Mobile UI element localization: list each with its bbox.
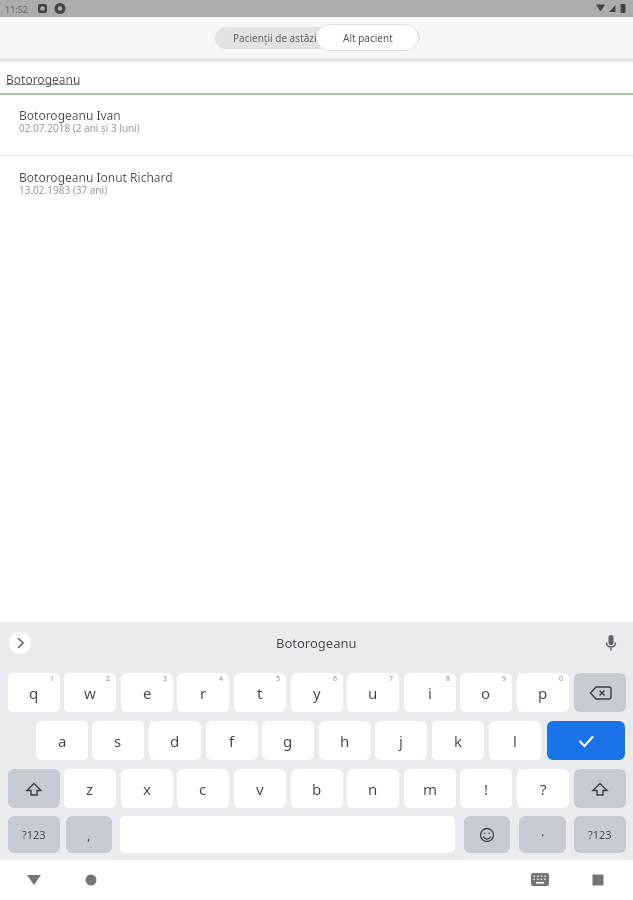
button[interactable]: ?123 [574,816,626,853]
button[interactable]: z [64,769,116,808]
staticText: o [481,683,491,703]
button[interactable]: ?123 [8,816,60,853]
button[interactable] [215,27,420,49]
staticText: 11:52 [5,3,29,15]
staticText: t [257,683,263,703]
staticText: e [143,683,152,703]
button[interactable]: l [489,721,541,760]
button[interactable] [464,816,510,853]
staticText: i [428,683,432,703]
staticText: f [229,731,235,751]
staticText: v [256,779,264,799]
staticText: 7 [389,674,394,684]
button[interactable]: m [404,769,456,808]
staticText: ?123 [22,827,46,842]
button[interactable] [16,862,52,898]
staticText: ? [540,779,547,799]
button[interactable]: h [319,721,371,760]
staticText: 6 [333,674,338,684]
button[interactable]: Alt pacient [316,24,419,51]
staticText: z [86,779,94,799]
staticText: 02.07.2018 (2 ani și 3 luni) [19,121,140,135]
staticText: 3 [163,674,168,684]
staticText: Pacienții de astăzi [233,31,317,45]
staticText: Botorogeanu Ivan [19,107,121,123]
staticText: 2 [106,674,111,684]
staticText: n [368,779,378,799]
staticText: Botorogeanu [276,634,357,652]
staticText: 5 [276,674,281,684]
button[interactable]: x [121,769,173,808]
button[interactable]: w [64,673,116,712]
staticText: · [541,826,545,844]
staticText: h [340,731,350,751]
staticText: ! [484,779,489,799]
staticText: 1 [50,674,55,684]
button[interactable] [9,632,31,654]
staticText: q [29,683,39,703]
button[interactable]: g [262,721,314,760]
button[interactable]: t [234,673,286,712]
staticText: l [513,731,517,751]
staticText: 8 [446,674,451,684]
button[interactable] [580,862,616,898]
button[interactable]: d [149,721,201,760]
button[interactable] [574,673,626,712]
staticText: Botorogeanu [6,71,81,87]
button[interactable]: o [460,673,512,712]
button[interactable] [522,862,558,898]
staticText: a [58,731,67,751]
button[interactable]: r [177,673,229,712]
button[interactable]: f [206,721,258,760]
button[interactable]: q [8,673,60,712]
staticText: Botorogeanu Ionut Richard [19,169,173,185]
staticText: m [423,779,438,799]
staticText: d [170,731,180,751]
button[interactable]: Botorogeanu Ivan [0,101,633,155]
button[interactable]: p [517,673,569,712]
button[interactable]: i [404,673,456,712]
button[interactable]: k [432,721,484,760]
button[interactable]: u [347,673,399,712]
button[interactable] [574,769,626,808]
button[interactable]: e [121,673,173,712]
staticText: w [84,683,96,703]
button[interactable]: Botorogeanu Ionut Richard [0,163,633,217]
button[interactable]: v [234,769,286,808]
staticText: b [312,779,322,799]
button[interactable] [547,721,625,760]
staticText: y [313,683,321,703]
button[interactable]: n [347,769,399,808]
button[interactable]: a [36,721,88,760]
button[interactable]: c [177,769,229,808]
button[interactable] [73,862,109,898]
button[interactable]: b [291,769,343,808]
staticText: j [399,731,403,751]
staticText: s [114,731,122,751]
button[interactable]: y [291,673,343,712]
staticText: 13.02.1983 (37 ani) [19,183,108,197]
button[interactable]: ? [517,769,569,808]
staticText: ?123 [588,827,612,842]
button[interactable]: Botorogeanu [0,630,633,656]
button[interactable]: j [375,721,427,760]
staticText: k [454,731,463,751]
staticText: g [283,731,293,751]
staticText: 9 [502,674,507,684]
staticText: x [143,779,151,799]
staticText: 4 [219,674,224,684]
staticText: Alt pacient [343,31,393,45]
button[interactable]: s [92,721,144,760]
button[interactable] [8,769,60,808]
button[interactable]: , [66,816,112,853]
staticText: c [199,779,207,799]
button[interactable]: · [519,816,566,853]
staticText: , [87,826,91,844]
staticText: p [538,683,548,703]
button[interactable]: ! [460,769,512,808]
staticText: 0 [559,674,564,684]
staticText: u [368,683,378,703]
staticText: r [200,683,207,703]
